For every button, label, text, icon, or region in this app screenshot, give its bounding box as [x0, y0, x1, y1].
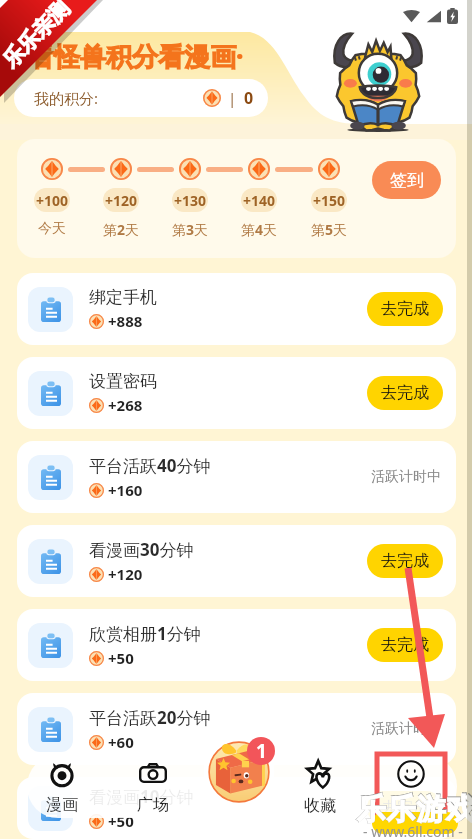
button[interactable]: 活跃计时中	[369, 462, 443, 492]
staticText: 漫画	[46, 795, 78, 815]
button[interactable]: 活跃计时中	[369, 714, 443, 744]
staticText: 乐乐亲测	[0, 0, 75, 73]
button[interactable]: 看漫画30分钟	[17, 525, 456, 597]
staticText: 平台活跃40分钟	[89, 454, 211, 477]
button[interactable]: 漫画	[27, 755, 97, 818]
staticText: |	[228, 88, 237, 108]
button[interactable]: 去完成	[367, 292, 443, 326]
button[interactable]: 看漫画10分钟	[17, 777, 456, 839]
button[interactable]: 我的	[376, 755, 446, 818]
button[interactable]: 签到	[372, 161, 441, 199]
staticText: 活跃计时中	[371, 720, 441, 738]
staticText: +50	[108, 648, 134, 668]
staticText: 去完成	[381, 299, 429, 319]
button[interactable]: 欣赏相册1分钟	[17, 609, 456, 681]
other: 收藏	[306, 760, 335, 789]
staticText: +268	[108, 395, 143, 415]
staticText: - www.6ll.com -	[363, 822, 463, 839]
staticText: 去完成	[381, 798, 429, 818]
staticText: 乐乐游戏	[357, 791, 472, 828]
staticText: 第3天	[172, 220, 209, 239]
button[interactable]: 平台活跃20分钟	[17, 693, 456, 765]
button[interactable]: 去完成	[367, 544, 443, 578]
staticText: +140	[243, 191, 276, 210]
button[interactable]: 我的积分:	[14, 79, 268, 117]
button[interactable]: 礼包	[203, 736, 275, 808]
staticText: 乐乐游戏	[356, 790, 472, 828]
staticText: 欣赏相册1分钟	[89, 622, 201, 645]
button[interactable]: 设置密码	[17, 357, 456, 429]
staticText: 看怪兽积分看漫画·	[28, 38, 244, 74]
staticText: 广场	[137, 795, 169, 815]
staticText: 签到	[390, 170, 424, 191]
staticText: 绑定手机	[89, 287, 157, 308]
staticText: 第5天	[311, 220, 348, 239]
staticText: +60	[108, 732, 134, 752]
staticText: 我的积分:	[34, 88, 99, 108]
staticText: +888	[108, 311, 143, 331]
staticText: 去完成	[381, 635, 429, 655]
other: 漫画	[48, 760, 76, 788]
staticText: +130	[174, 191, 207, 210]
button[interactable]: 去完成	[367, 791, 443, 825]
staticText: +160	[108, 480, 143, 500]
button[interactable]: 去完成	[367, 628, 443, 662]
other: 我的	[397, 760, 425, 788]
staticText: 去完成	[381, 383, 429, 403]
staticText: +50	[108, 811, 134, 831]
staticText: 活跃计时中	[371, 468, 441, 486]
staticText: 看漫画10分钟	[89, 785, 194, 808]
staticText: 1	[256, 738, 267, 764]
button[interactable]: 广场	[118, 755, 188, 818]
staticText: +100	[36, 191, 69, 210]
staticText: +120	[108, 564, 143, 584]
staticText: 第4天	[241, 220, 278, 239]
button[interactable]: 去完成	[367, 376, 443, 410]
staticText: 今天	[38, 220, 66, 238]
staticText: 去完成	[381, 551, 429, 571]
staticText: +150	[313, 191, 346, 210]
staticText: 0	[244, 87, 254, 109]
staticText: 设置密码	[89, 371, 157, 392]
staticText: +120	[105, 191, 138, 210]
button[interactable]: 收藏	[285, 755, 355, 818]
other: 广场	[139, 760, 167, 788]
staticText: 平台活跃20分钟	[89, 706, 211, 729]
button[interactable]: 平台活跃40分钟	[17, 441, 456, 513]
staticText: 第2天	[103, 220, 140, 239]
staticText: 收藏	[304, 796, 336, 816]
button[interactable]: 绑定手机	[17, 273, 456, 345]
staticText: 看漫画30分钟	[89, 538, 194, 561]
